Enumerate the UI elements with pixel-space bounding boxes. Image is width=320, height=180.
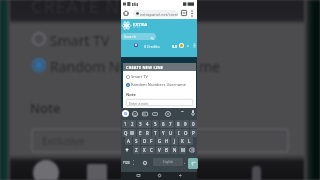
- staticText: 8: [177, 121, 180, 127]
- staticText: 6: [162, 121, 165, 127]
- button[interactable]: 3: [137, 120, 144, 128]
- staticText: 9: [184, 121, 187, 127]
- button[interactable]: Keyboard tool: [152, 111, 158, 117]
- button[interactable]: K: [179, 137, 186, 145]
- button[interactable]: Menu: [193, 43, 196, 48]
- staticText: me: [199, 57, 220, 76]
- button[interactable]: 0: [190, 120, 197, 128]
- staticText: EXTRA: [133, 22, 148, 27]
- staticText: V: [158, 147, 161, 153]
- button[interactable]: Back: [179, 174, 182, 177]
- staticText: G: [158, 138, 162, 144]
- button[interactable]: M: [179, 146, 186, 154]
- button[interactable]: Smart TV: [126, 74, 148, 79]
- button[interactable]: G: [156, 137, 163, 145]
- staticText: U: [169, 130, 173, 136]
- button[interactable]: 8: [175, 120, 182, 128]
- staticText: T: [154, 130, 157, 136]
- button[interactable]: Keyboard tool: [142, 111, 148, 117]
- button[interactable]: F: [148, 137, 155, 145]
- button[interactable]: 9: [182, 120, 189, 128]
- staticText: X: [143, 147, 146, 153]
- button[interactable]: Y: [160, 129, 167, 137]
- button[interactable]: More options: [191, 10, 193, 17]
- button[interactable]: English: [153, 158, 183, 166]
- button[interactable]: X: [141, 146, 148, 154]
- button[interactable]: 1: [122, 120, 129, 128]
- staticText: H: [165, 138, 169, 144]
- staticText: CREATE NEW: [31, 0, 149, 19]
- staticText: J: [174, 138, 176, 144]
- button[interactable]: B: [163, 146, 170, 154]
- button[interactable]: W: [129, 129, 136, 137]
- button[interactable]: C: [148, 146, 155, 154]
- button[interactable]: Home: [123, 10, 129, 16]
- button[interactable]: P: [190, 129, 197, 137]
- staticText: O: [184, 130, 188, 136]
- button[interactable]: Random Numbers Username: [126, 82, 186, 87]
- staticText: S: [135, 138, 138, 144]
- button[interactable]: 5: [152, 120, 159, 128]
- button[interactable]: U: [167, 129, 174, 137]
- button[interactable]: Keyboard settings: [141, 157, 148, 168]
- staticText: extrapanel.net/creator: [140, 12, 178, 17]
- button[interactable]: Z: [133, 146, 140, 154]
- button[interactable]: S: [133, 137, 140, 145]
- staticText: 3: [139, 121, 142, 127]
- button[interactable]: R: [144, 129, 151, 137]
- staticText: I: [178, 130, 180, 136]
- button[interactable]: T: [152, 129, 159, 137]
- button[interactable]: extrapanel.net/creator: [133, 10, 178, 17]
- staticText: Z: [135, 147, 138, 153]
- button[interactable]: H: [163, 137, 170, 145]
- staticText: 7: [169, 121, 172, 127]
- button[interactable]: 2: [129, 120, 136, 128]
- staticText: ▾: [187, 44, 189, 48]
- button[interactable]: Voice input: [191, 110, 195, 116]
- button[interactable]: Search: [121, 33, 156, 40]
- staticText: W: [130, 130, 135, 136]
- button[interactable]: A: [125, 137, 132, 145]
- button[interactable]: 7: [167, 120, 174, 128]
- button[interactable]: Home: [158, 174, 161, 177]
- button[interactable]: ?123: [123, 157, 130, 168]
- staticText: ?123: [123, 161, 130, 165]
- button[interactable]: 6: [160, 120, 167, 128]
- staticText: 2: [131, 121, 134, 127]
- button[interactable]: Enter: [188, 158, 198, 169]
- button[interactable]: Keyboard tool: [165, 111, 171, 117]
- button[interactable]: Q: [122, 129, 129, 137]
- button[interactable]: Keyboard tool: [132, 111, 138, 117]
- staticText: Note: [30, 99, 61, 117]
- staticText: F: [150, 138, 153, 144]
- button[interactable]: D: [141, 137, 148, 145]
- staticText: L: [188, 138, 191, 144]
- button[interactable]: .: [183, 157, 187, 168]
- button[interactable]: [131, 157, 136, 168]
- staticText: Enter a note: [129, 101, 149, 106]
- button[interactable]: G: [122, 110, 129, 117]
- button[interactable]: L: [186, 137, 193, 145]
- button[interactable]: J: [171, 137, 178, 145]
- staticText: D: [143, 138, 147, 144]
- button[interactable]: I: [175, 129, 182, 137]
- button[interactable]: E: [137, 129, 144, 137]
- staticText: N: [173, 147, 177, 153]
- button[interactable]: Tabs: [181, 10, 187, 16]
- button[interactable]: Recents: [137, 174, 140, 177]
- staticText: Y: [162, 130, 165, 136]
- staticText: Random Numbers Username: [131, 82, 186, 87]
- button[interactable]: V: [156, 146, 163, 154]
- staticText: C: [150, 147, 153, 153]
- button[interactable]: O: [182, 129, 189, 137]
- staticText: G: [124, 111, 128, 117]
- button[interactable]: Backspace: [187, 146, 195, 154]
- button[interactable]: Shift: [123, 146, 131, 154]
- staticText: Q: [124, 130, 128, 136]
- button[interactable]: 4: [144, 120, 151, 128]
- staticText: Note: [126, 92, 136, 97]
- staticText: Smart TV: [50, 31, 110, 50]
- staticText: P: [192, 130, 195, 136]
- staticText: 5: [154, 121, 157, 127]
- button[interactable]: N: [171, 146, 178, 154]
